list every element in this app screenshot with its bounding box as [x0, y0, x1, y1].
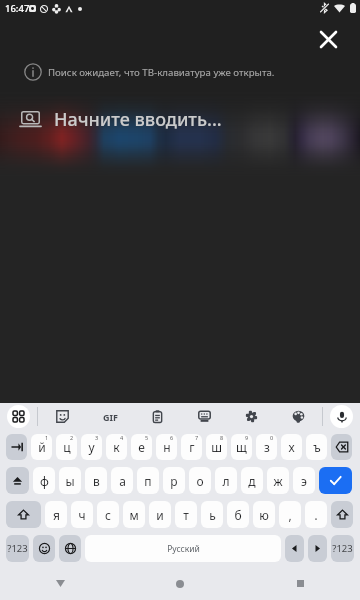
staticText: р	[170, 473, 178, 489]
staticText: т	[183, 507, 189, 523]
staticText: й	[38, 439, 46, 455]
staticText: е	[138, 439, 145, 455]
button[interactable]: Русский	[85, 535, 281, 562]
button[interactable]: ч	[71, 501, 93, 528]
button[interactable]: с	[97, 501, 119, 528]
staticText: ъ	[313, 439, 321, 455]
button[interactable]: Recent apps	[240, 567, 360, 600]
button[interactable]: .	[305, 501, 327, 528]
button[interactable]: Enter	[319, 467, 352, 494]
staticText: 3	[95, 434, 99, 441]
staticText: ц	[63, 439, 71, 455]
button[interactable]: э	[293, 467, 315, 494]
staticText: с	[105, 507, 111, 523]
button[interactable]: ш	[206, 434, 227, 460]
button[interactable]: ъ	[306, 434, 327, 460]
button[interactable]: п	[137, 467, 159, 494]
button[interactable]: у	[81, 434, 102, 460]
button[interactable]: я	[45, 501, 67, 528]
button[interactable]: г	[181, 434, 202, 460]
button[interactable]: Themes	[275, 403, 322, 430]
button[interactable]: б	[227, 501, 249, 528]
staticText: ,	[288, 507, 292, 523]
staticText: д	[248, 473, 256, 489]
staticText: 0	[270, 434, 274, 441]
button[interactable]: Close	[312, 23, 344, 55]
button[interactable]: ж	[267, 467, 289, 494]
staticText: 8	[220, 434, 224, 441]
staticText: ф	[40, 473, 49, 489]
staticText: н	[163, 439, 171, 455]
button[interactable]: д	[241, 467, 263, 494]
staticText: я	[53, 507, 60, 523]
staticText: 5	[145, 434, 149, 441]
staticText: к	[113, 439, 120, 455]
button[interactable]: Move cursor left	[285, 535, 304, 562]
staticText: 9	[245, 434, 249, 441]
button[interactable]: ?123	[331, 535, 354, 562]
staticText: а	[119, 473, 126, 489]
staticText: ы	[65, 473, 75, 489]
staticText: ж	[273, 473, 283, 489]
staticText: э	[301, 473, 307, 489]
staticText: ч	[78, 507, 86, 523]
button[interactable]: н	[156, 434, 177, 460]
button[interactable]: Voice input	[323, 403, 360, 430]
button[interactable]: ,	[279, 501, 301, 528]
button[interactable]: ф	[33, 467, 55, 494]
button[interactable]: а	[111, 467, 133, 494]
staticText: Поиск ожидает, что ТВ-клавиатура уже отк…	[48, 66, 275, 79]
staticText: 6	[170, 434, 174, 441]
button[interactable]: к	[106, 434, 127, 460]
button[interactable]: Tab	[6, 434, 27, 460]
staticText: м	[129, 507, 139, 523]
staticText: в	[93, 473, 100, 489]
button[interactable]: Home	[120, 567, 240, 600]
button[interactable]: х	[281, 434, 302, 460]
staticText: Начните вводить...	[54, 107, 222, 132]
staticText: Русский	[167, 543, 200, 555]
button[interactable]: м	[123, 501, 145, 528]
staticText: х	[288, 439, 295, 455]
button[interactable]: и	[149, 501, 171, 528]
button[interactable]: з	[256, 434, 277, 460]
staticText: щ	[236, 439, 247, 455]
button[interactable]: Settings	[228, 403, 275, 430]
button[interactable]: й	[31, 434, 52, 460]
button[interactable]: т	[175, 501, 197, 528]
button[interactable]: щ	[231, 434, 252, 460]
button[interactable]: р	[163, 467, 185, 494]
button[interactable]: Shift right	[331, 501, 353, 528]
button[interactable]: Back	[0, 567, 120, 600]
button[interactable]: Emoji	[33, 535, 55, 562]
button[interactable]: в	[85, 467, 107, 494]
button[interactable]: All apps	[0, 403, 37, 430]
button[interactable]: Keyboard mode	[181, 403, 228, 430]
staticText: ь	[209, 507, 216, 523]
button[interactable]: Change language	[59, 535, 81, 562]
button[interactable]: GIF	[86, 403, 134, 430]
button[interactable]: о	[189, 467, 211, 494]
staticText: 1	[45, 434, 49, 441]
button[interactable]: Clipboard	[134, 403, 181, 430]
staticText: у	[88, 439, 95, 455]
button[interactable]: ю	[253, 501, 275, 528]
button[interactable]: е	[131, 434, 152, 460]
staticText: о	[196, 473, 204, 489]
button[interactable]: Move cursor right	[308, 535, 327, 562]
staticText: GIF	[103, 411, 118, 423]
button[interactable]: ц	[56, 434, 77, 460]
button[interactable]: ?123	[6, 535, 29, 562]
button[interactable]: Shift	[6, 501, 41, 528]
staticText: .	[314, 506, 318, 524]
button[interactable]: Stickers	[38, 403, 86, 430]
staticText: 2	[70, 434, 74, 441]
button[interactable]: Caps lock	[6, 467, 29, 494]
button[interactable]: л	[215, 467, 237, 494]
button[interactable]: Backspace	[331, 434, 352, 460]
staticText: ?123	[332, 542, 353, 555]
staticText: 4	[120, 434, 124, 441]
button[interactable]: ы	[59, 467, 81, 494]
button[interactable]: ь	[201, 501, 223, 528]
staticText: п	[144, 473, 152, 489]
